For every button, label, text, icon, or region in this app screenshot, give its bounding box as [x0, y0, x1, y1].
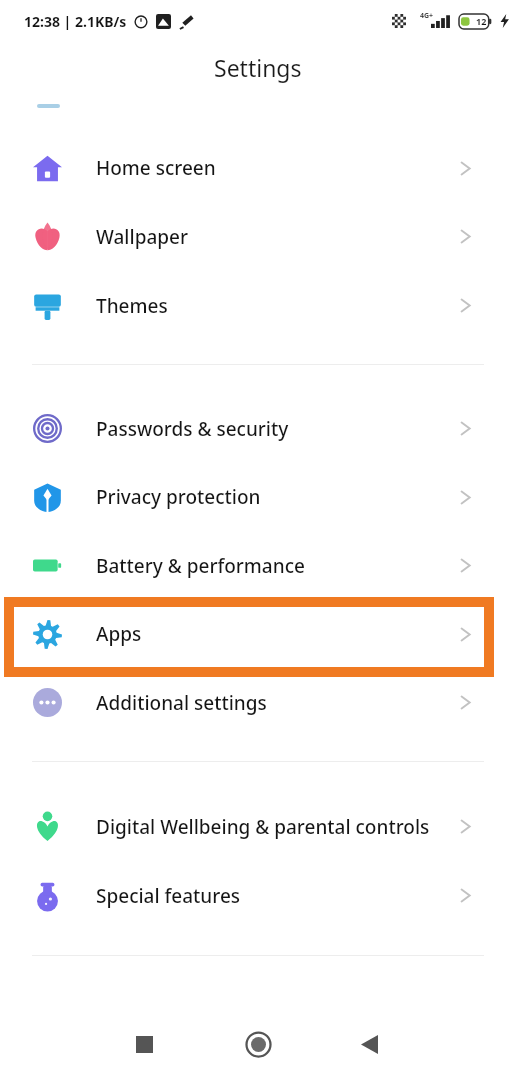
staticText: Passwords & security	[96, 416, 289, 442]
staticText: 12:38 | 2.1KB/s	[24, 12, 127, 31]
button[interactable]: Themes	[0, 271, 516, 340]
button[interactable]: Home	[235, 1021, 281, 1067]
button[interactable]: Battery & performance	[0, 531, 516, 600]
staticText: Settings	[214, 52, 302, 83]
staticText: Battery & performance	[96, 553, 305, 579]
button[interactable]: Back	[347, 1022, 391, 1066]
staticText: 4G+	[420, 11, 434, 21]
button[interactable]: Passwords & security	[0, 394, 516, 463]
staticText: Additional settings	[96, 690, 267, 716]
button[interactable]: Wallpaper	[0, 202, 516, 271]
staticText: Themes	[96, 293, 168, 319]
button[interactable]: Digital Wellbeing & parental controls	[0, 792, 516, 861]
button[interactable]: Privacy protection	[0, 463, 516, 531]
staticText: 12	[476, 15, 487, 27]
staticText: Privacy protection	[96, 484, 261, 510]
button[interactable]: Additional settings	[0, 668, 516, 737]
staticText: Special features	[96, 883, 241, 909]
button[interactable]: Special features	[0, 861, 516, 930]
staticText: Wallpaper	[96, 224, 188, 250]
button[interactable]: Recent apps	[122, 1022, 166, 1066]
staticText: Digital Wellbeing & parental controls	[96, 814, 430, 840]
staticText: Apps	[96, 621, 142, 647]
button[interactable]: Home screen	[0, 134, 516, 202]
button[interactable]: Apps	[0, 600, 516, 668]
staticText: Home screen	[96, 155, 216, 181]
